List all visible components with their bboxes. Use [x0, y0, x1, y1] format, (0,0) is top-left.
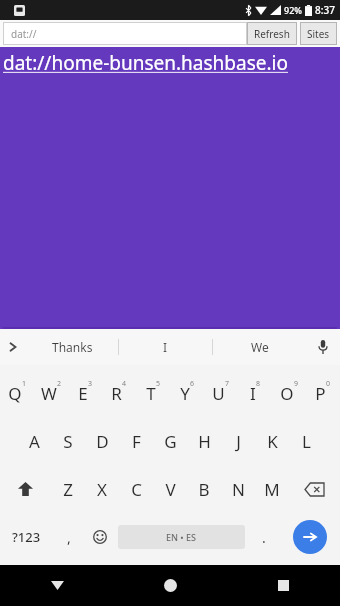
button[interactable]: X: [85, 465, 119, 513]
button[interactable]: Q: [0, 369, 34, 417]
staticText: G: [164, 430, 177, 453]
staticText: V: [165, 478, 176, 501]
staticText: P: [315, 382, 326, 405]
staticText: C: [131, 478, 142, 501]
button[interactable]: Shift: [0, 465, 51, 513]
button[interactable]: Home: [114, 565, 227, 606]
staticText: J: [236, 430, 241, 453]
button[interactable]: dat://: [3, 22, 247, 45]
staticText: K: [267, 430, 278, 453]
button[interactable]: O: [272, 369, 306, 417]
button[interactable]: Sites: [300, 22, 337, 45]
button[interactable]: B: [187, 465, 221, 513]
staticText: O: [280, 382, 294, 405]
staticText: 7: [225, 379, 230, 389]
button[interactable]: D: [85, 417, 119, 465]
staticText: 8: [256, 379, 261, 389]
button[interactable]: K: [255, 417, 289, 465]
staticText: 8:37: [315, 3, 335, 17]
button[interactable]: V: [153, 465, 187, 513]
staticText: I: [163, 339, 168, 355]
button[interactable]: U: [204, 369, 238, 417]
button[interactable]: P: [306, 369, 340, 417]
button[interactable]: G: [153, 417, 187, 465]
button[interactable]: N: [221, 465, 255, 513]
button[interactable]: E: [68, 369, 102, 417]
staticText: M: [264, 478, 280, 501]
button[interactable]: A: [17, 417, 51, 465]
button[interactable]: Recent apps: [227, 565, 340, 606]
button[interactable]: I: [119, 329, 212, 365]
staticText: 2: [57, 379, 62, 389]
staticText: F: [132, 430, 141, 453]
staticText: dat://: [11, 27, 37, 41]
button[interactable]: Enter: [279, 513, 340, 561]
staticText: N: [232, 478, 245, 501]
button[interactable]: T: [136, 369, 170, 417]
staticText: EN • ES: [166, 531, 197, 543]
staticText: Thanks: [52, 339, 93, 355]
staticText: Sites: [307, 27, 330, 41]
staticText: S: [63, 430, 73, 453]
staticText: 1: [22, 379, 27, 389]
staticText: 4: [122, 379, 127, 389]
button[interactable]: S: [51, 417, 85, 465]
staticText: B: [198, 478, 210, 501]
staticText: I: [250, 382, 256, 405]
staticText: A: [29, 430, 40, 453]
button[interactable]: Back: [0, 565, 114, 606]
staticText: Refresh: [254, 27, 290, 41]
staticText: We: [251, 339, 269, 355]
button[interactable]: I: [238, 369, 272, 417]
button[interactable]: ,: [53, 513, 84, 561]
staticText: 3: [88, 379, 93, 389]
staticText: U: [212, 382, 225, 405]
staticText: W: [41, 382, 57, 405]
button[interactable]: Space: [118, 525, 245, 549]
staticText: ?123: [12, 528, 41, 546]
staticText: dat://home-bunsen.hashbase.io: [3, 50, 288, 76]
button[interactable]: H: [187, 417, 221, 465]
button[interactable]: ?123: [0, 513, 53, 561]
button[interactable]: M: [255, 465, 289, 513]
staticText: 6: [190, 379, 195, 389]
button[interactable]: Z: [51, 465, 85, 513]
staticText: L: [302, 430, 311, 453]
button[interactable]: W: [34, 369, 68, 417]
button[interactable]: Refresh: [247, 22, 297, 45]
staticText: Y: [180, 382, 190, 405]
staticText: 5: [156, 379, 161, 389]
button[interactable]: Voice input: [306, 329, 340, 365]
staticText: H: [198, 430, 211, 453]
button[interactable]: .: [248, 513, 279, 561]
staticText: 9: [294, 379, 299, 389]
button[interactable]: Expand suggestions: [0, 329, 26, 365]
button[interactable]: Emoji: [84, 513, 115, 561]
staticText: 0: [326, 379, 331, 389]
staticText: Q: [8, 382, 22, 405]
staticText: R: [111, 382, 122, 405]
staticText: T: [146, 382, 156, 405]
button[interactable]: We: [213, 329, 306, 365]
staticText: .: [262, 528, 266, 547]
button[interactable]: dat://home-bunsen.hashbase.io: [3, 50, 288, 76]
button[interactable]: Y: [170, 369, 204, 417]
staticText: D: [96, 430, 109, 453]
button[interactable]: Thanks: [26, 329, 118, 365]
button[interactable]: R: [102, 369, 136, 417]
button[interactable]: Backspace: [289, 465, 340, 513]
staticText: E: [78, 382, 88, 405]
button[interactable]: L: [289, 417, 323, 465]
button[interactable]: F: [119, 417, 153, 465]
staticText: Z: [63, 478, 73, 501]
staticText: ,: [67, 528, 71, 547]
staticText: X: [97, 478, 107, 501]
staticText: 92%: [284, 4, 302, 16]
button[interactable]: C: [119, 465, 153, 513]
button[interactable]: J: [221, 417, 255, 465]
